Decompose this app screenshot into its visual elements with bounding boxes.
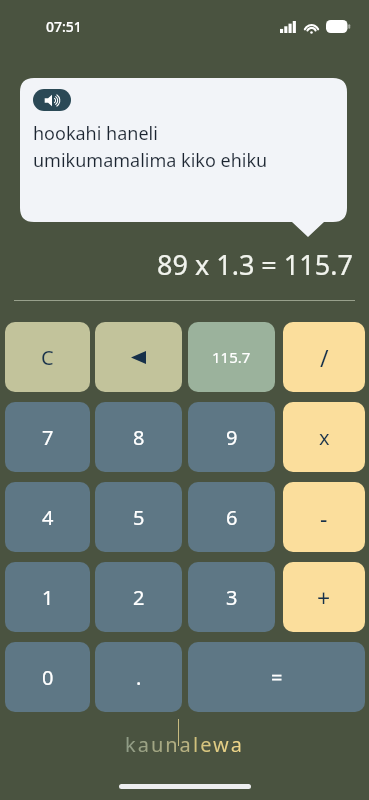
button[interactable]: 7 bbox=[5, 402, 90, 472]
button[interactable]: = bbox=[188, 642, 365, 712]
staticText: - bbox=[320, 502, 328, 533]
button[interactable]: 3 bbox=[188, 562, 275, 632]
staticText: 0 bbox=[42, 664, 54, 691]
button[interactable]: . bbox=[95, 642, 182, 712]
staticText: 6 bbox=[226, 504, 238, 531]
staticText: lewa bbox=[193, 731, 244, 758]
button[interactable]: 1 bbox=[5, 562, 90, 632]
staticText: 89 x 1.3 = 115.7 bbox=[157, 246, 353, 283]
staticText: 115.7 bbox=[212, 347, 251, 367]
button[interactable]: 2 bbox=[95, 562, 182, 632]
staticText: 07:51 bbox=[46, 17, 82, 36]
button[interactable]: 0 bbox=[5, 642, 90, 712]
staticText: 3 bbox=[226, 584, 238, 611]
staticText: 5 bbox=[133, 504, 145, 531]
button[interactable]: x bbox=[283, 402, 365, 472]
staticText: 4 bbox=[42, 504, 54, 531]
staticText: hookahi haneli umikumamalima kiko ehiku bbox=[33, 121, 268, 172]
button[interactable]: Backspace bbox=[95, 322, 182, 392]
button[interactable]: 5 bbox=[95, 482, 182, 552]
staticText: 1 bbox=[42, 584, 54, 611]
button[interactable]: + bbox=[283, 562, 365, 632]
button[interactable]: Speak phrase bbox=[33, 89, 71, 111]
button[interactable]: 6 bbox=[188, 482, 275, 552]
staticText: . bbox=[136, 664, 142, 691]
button[interactable]: 9 bbox=[188, 402, 275, 472]
button[interactable]: 115.7 bbox=[188, 322, 275, 392]
staticText: 7 bbox=[42, 424, 54, 451]
staticText: 9 bbox=[226, 424, 238, 451]
button[interactable]: 8 bbox=[95, 402, 182, 472]
button[interactable]: C bbox=[5, 322, 90, 392]
staticText: + bbox=[317, 582, 331, 613]
staticText: 8 bbox=[133, 424, 145, 451]
button[interactable]: 4 bbox=[5, 482, 90, 552]
staticText: kauna bbox=[125, 731, 193, 758]
button[interactable]: / bbox=[283, 322, 365, 392]
button[interactable]: - bbox=[283, 482, 365, 552]
staticText: x bbox=[319, 424, 330, 451]
staticText: 2 bbox=[133, 584, 145, 611]
staticText: / bbox=[320, 342, 329, 373]
staticText: C bbox=[41, 344, 54, 371]
staticText: = bbox=[271, 664, 283, 691]
